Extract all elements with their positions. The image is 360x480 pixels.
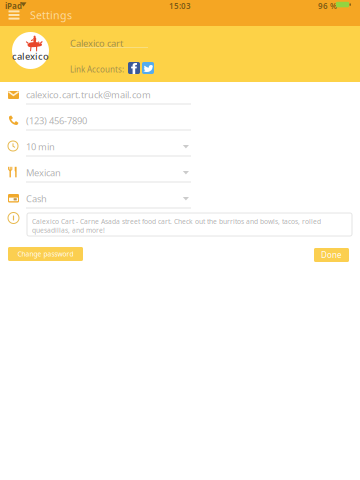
button[interactable]: (123) 456-7890 bbox=[8, 113, 189, 135]
button[interactable]: Cash bbox=[8, 191, 189, 213]
staticText: Calexico Cart - Carne Asada street food … bbox=[32, 217, 321, 235]
staticText: Settings bbox=[30, 8, 72, 22]
staticText: Link Accounts: bbox=[70, 64, 124, 75]
button[interactable]: Menu bbox=[3, 5, 24, 25]
staticText: Mexican bbox=[26, 166, 61, 179]
staticText: 15:03 bbox=[169, 0, 191, 11]
staticText: 10 min bbox=[26, 140, 55, 153]
button[interactable]: 10 min bbox=[8, 139, 189, 161]
button[interactable]: Link Twitter bbox=[142, 62, 154, 74]
button[interactable]: Done bbox=[314, 248, 349, 262]
staticText: 96 % bbox=[318, 0, 337, 11]
button[interactable]: Mexican bbox=[8, 165, 189, 187]
button[interactable]: Change password bbox=[8, 247, 83, 261]
staticText: iPad bbox=[5, 0, 22, 11]
staticText: Change password bbox=[17, 250, 73, 258]
staticText: (123) 456-7890 bbox=[26, 114, 87, 127]
button[interactable]: Link Facebook bbox=[128, 62, 140, 74]
staticText: Cash bbox=[26, 192, 47, 205]
staticText: Calexico cart bbox=[70, 37, 123, 49]
staticText: Done bbox=[321, 250, 342, 260]
staticText: calexico.cart.truck@mail.com bbox=[26, 88, 151, 101]
button[interactable]: calexico.cart.truck@mail.com bbox=[8, 87, 189, 109]
staticText: calexico bbox=[12, 50, 49, 62]
